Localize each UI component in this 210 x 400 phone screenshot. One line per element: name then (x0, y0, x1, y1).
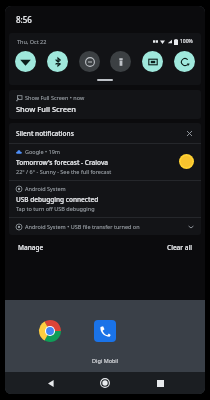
button[interactable]: Wi-Fi (15, 51, 36, 72)
staticText: Thu, Oct 22 (17, 38, 47, 45)
button[interactable]: Silent notifications (9, 123, 201, 143)
button[interactable]: Clear silent notifications (184, 128, 194, 138)
button[interactable]: Do Not Disturb (79, 51, 100, 72)
button[interactable]: Recent apps (151, 374, 169, 392)
staticText: Show Full Screen (16, 104, 77, 114)
button[interactable]: Phone (94, 320, 116, 342)
button[interactable]: Google • 19m (9, 144, 201, 180)
staticText: Android System (25, 185, 66, 192)
button[interactable]: Flashlight (110, 51, 131, 72)
staticText: Show Full Screen • now (25, 94, 85, 101)
button[interactable]: Android System • USB file transfer turne… (9, 218, 201, 235)
staticText: Android System • USB file transfer turne… (25, 223, 188, 230)
button[interactable]: Android System (9, 181, 201, 217)
button[interactable]: Bluetooth (47, 51, 68, 72)
staticText: Tap to turn off USB debugging (16, 205, 95, 212)
button[interactable]: Clear all (164, 241, 195, 254)
button[interactable]: Manage (15, 241, 47, 254)
staticText: Manage (18, 243, 44, 252)
staticText: Google • 19m (25, 148, 60, 155)
button[interactable]: Home (96, 374, 114, 392)
staticText: 100% (180, 38, 193, 45)
staticText: 8:56 (16, 14, 32, 25)
button[interactable]: Auto-rotate (174, 51, 195, 72)
button[interactable]: Show Full Screen • now (9, 90, 201, 119)
button[interactable]: Chrome (39, 320, 61, 342)
staticText: Tomorrow's forecast - Craiova (16, 158, 109, 167)
button[interactable]: Back (42, 374, 60, 392)
staticText: USB debugging connected (16, 195, 99, 204)
staticText: Digi Mobil (92, 357, 119, 364)
staticText: Silent notifications (16, 129, 184, 138)
staticText: 22° / 6° - Sunny - See the full forecast (16, 168, 112, 175)
button[interactable]: Screen cast (142, 51, 163, 72)
staticText: Clear all (167, 243, 192, 252)
